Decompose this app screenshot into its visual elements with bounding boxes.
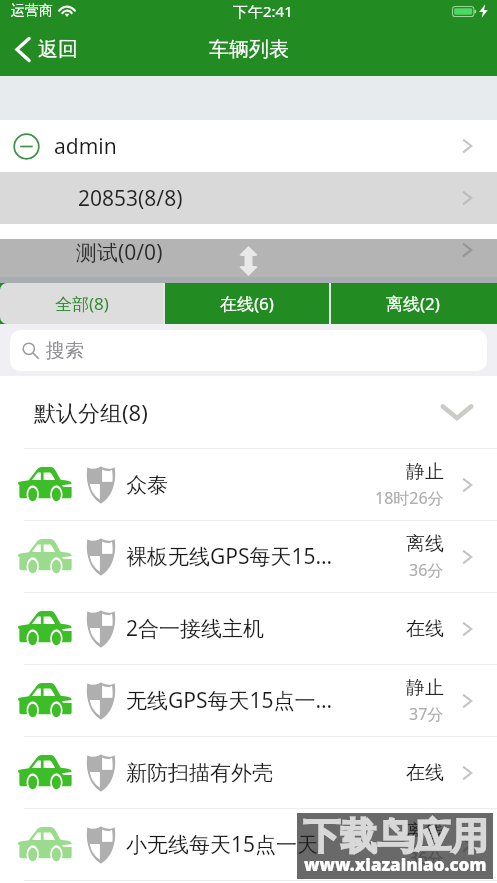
staticText: admin xyxy=(54,132,117,161)
staticText: 静止 xyxy=(406,460,444,484)
button[interactable]: 2合一接线主机 xyxy=(0,593,497,664)
button[interactable]: admin xyxy=(0,120,497,172)
staticText: 下午2:41 xyxy=(233,1,293,21)
staticText: 离线 xyxy=(406,820,444,844)
staticText: 下载鸟应用 xyxy=(303,813,488,860)
staticText: 返回 xyxy=(38,37,78,62)
button[interactable]: 默认分组(8) xyxy=(0,376,497,448)
button[interactable]: 在线(6) xyxy=(165,283,329,324)
staticText: 20853(8/8) xyxy=(78,184,183,213)
button[interactable]: 返回 xyxy=(0,22,497,76)
staticText: 搜索 xyxy=(46,339,84,363)
button[interactable]: 无线GPS每天15点一… xyxy=(0,665,497,736)
button[interactable]: 众泰 xyxy=(0,449,497,520)
staticText: 18时26分 xyxy=(375,487,444,509)
button[interactable]: 全部(8) xyxy=(0,283,163,324)
staticText: 静止 xyxy=(406,676,444,700)
other: Collapse group xyxy=(440,402,474,422)
staticText: 车辆列表 xyxy=(209,37,289,62)
staticText: 裸板无线GPS每天15… xyxy=(126,542,406,571)
staticText: 36分 xyxy=(409,559,444,581)
button[interactable]: 小无线每天15点一天 xyxy=(0,809,497,880)
staticText: 2合一接线主机 xyxy=(126,614,406,643)
button[interactable]: 裸板无线GPS每天15… xyxy=(0,521,497,592)
other: Resize xyxy=(239,246,258,276)
staticText: 全部(8) xyxy=(55,292,109,315)
button[interactable]: 新防扫描有外壳 xyxy=(0,737,497,808)
staticText: 默认分组(8) xyxy=(34,397,148,427)
staticText: 众泰 xyxy=(126,472,375,498)
staticText: 在线 xyxy=(406,617,444,641)
staticText: 在线 xyxy=(406,761,444,785)
button[interactable]: 离线(2) xyxy=(331,283,495,324)
staticText: 离线 xyxy=(406,532,444,556)
button[interactable]: 搜索 xyxy=(10,330,487,371)
staticText: 测试(0/0) xyxy=(76,238,163,267)
staticText: 新防扫描有外壳 xyxy=(126,760,406,786)
staticText: 小无线每天15点一天 xyxy=(126,830,406,859)
button[interactable]: 测试(0/0) xyxy=(0,239,497,277)
button[interactable]: 20853(8/8) xyxy=(0,172,497,224)
staticText: 36分 xyxy=(409,847,444,869)
staticText: 在线(6) xyxy=(220,292,274,315)
staticText: 37分 xyxy=(409,703,444,725)
staticText: 离线(2) xyxy=(386,292,440,315)
staticText: 无线GPS每天15点一… xyxy=(126,686,406,715)
staticText: www.xiazainiao.com xyxy=(304,853,487,876)
staticText: 运营商 xyxy=(11,2,53,20)
